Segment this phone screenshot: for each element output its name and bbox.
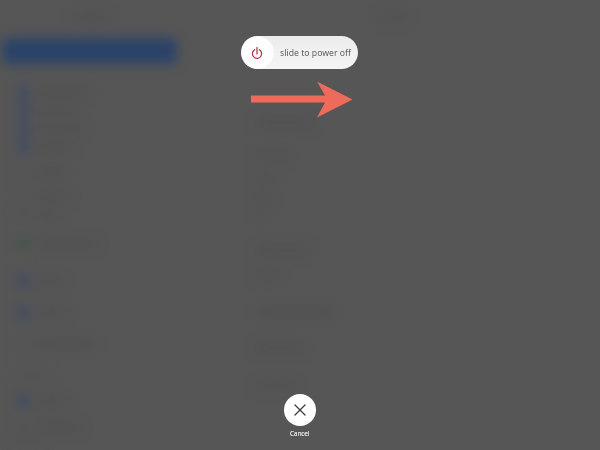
other: Cancel	[284, 394, 316, 426]
button[interactable]: Cancel	[284, 394, 316, 437]
button[interactable]: slide to power off	[241, 36, 358, 69]
staticText: slide to power off	[280, 47, 352, 59]
staticText: Cancel	[290, 429, 310, 437]
